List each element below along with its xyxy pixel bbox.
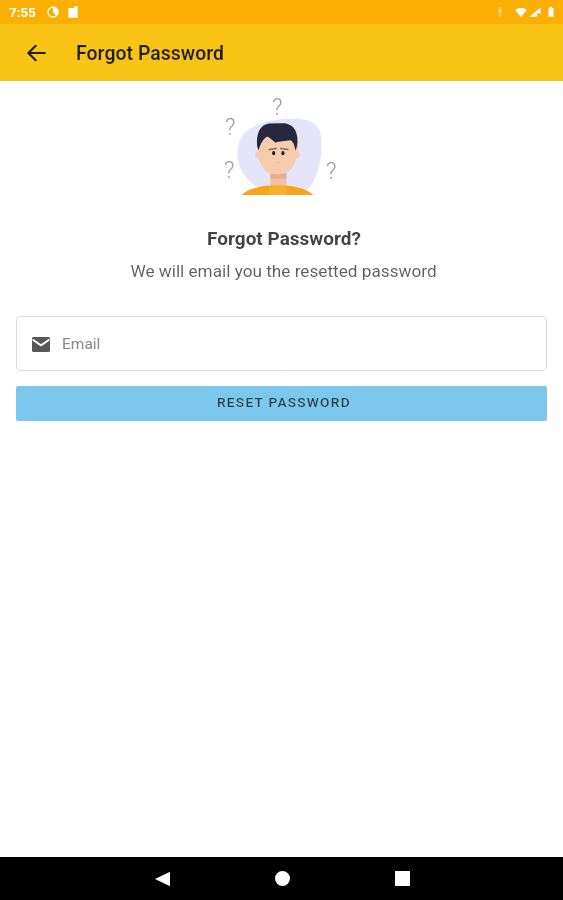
staticText: 7:55 (9, 4, 36, 20)
staticText: We will email you the resetted password (130, 261, 437, 281)
button[interactable]: Recent apps (372, 857, 432, 900)
staticText: ? (224, 157, 235, 184)
staticText: ? (225, 114, 236, 141)
staticText: Forgot Password? (207, 227, 361, 249)
staticText: ? (272, 94, 283, 121)
staticText: Forgot Password (76, 42, 225, 65)
button[interactable]: Home (252, 857, 312, 900)
button[interactable]: Back (132, 857, 192, 900)
button[interactable]: Email (16, 316, 547, 371)
staticText: ? (326, 158, 337, 185)
staticText: RESET PASSWORD (217, 394, 351, 410)
button[interactable]: Back (12, 29, 60, 77)
staticText: Email (62, 335, 101, 353)
button[interactable]: RESET PASSWORD (16, 386, 547, 421)
